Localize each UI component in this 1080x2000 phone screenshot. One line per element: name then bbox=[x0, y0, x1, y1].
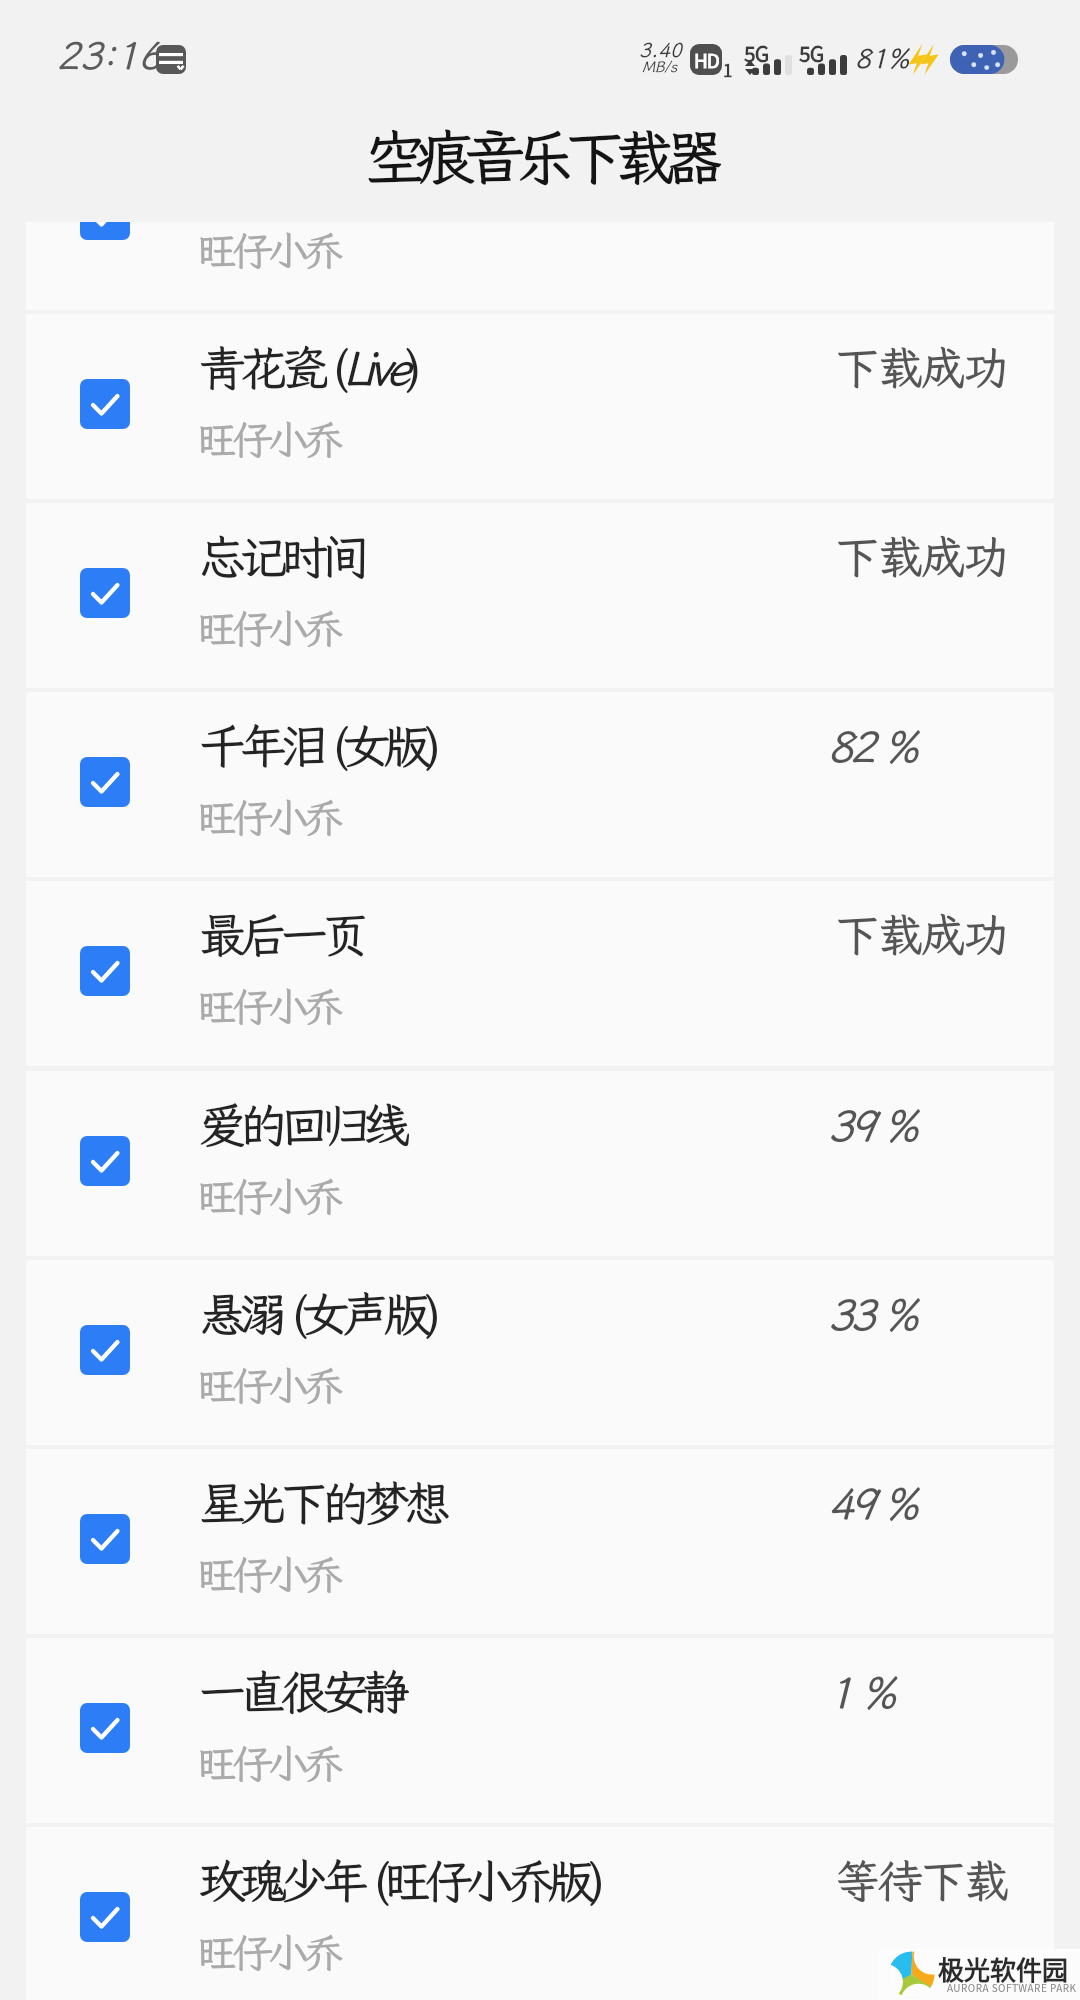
button[interactable]: Selected bbox=[80, 1703, 130, 1753]
staticText: AURORA SOFTWARE PARK bbox=[947, 1980, 1077, 1994]
staticText: 旺仔小乔 bbox=[197, 1359, 339, 1412]
staticText: 82 % bbox=[828, 718, 916, 775]
staticText: 爱的回归线 bbox=[199, 1093, 404, 1155]
staticText: 旺仔小乔 bbox=[197, 1548, 339, 1601]
staticText: 1 bbox=[723, 57, 733, 82]
other: Aurora Software Park bbox=[888, 1951, 935, 1998]
staticText: 旺仔小乔 bbox=[197, 413, 339, 466]
button[interactable]: Selected bbox=[26, 1449, 1054, 1634]
button[interactable]: Selected bbox=[80, 222, 130, 240]
staticText: MB/s bbox=[642, 57, 678, 77]
button[interactable]: Selected bbox=[80, 1514, 130, 1564]
staticText: 星光下的梦想 bbox=[199, 1471, 445, 1533]
other: Transit card bbox=[156, 45, 186, 74]
button[interactable]: Selected bbox=[26, 1638, 1054, 1823]
button[interactable]: Selected bbox=[26, 1260, 1054, 1445]
button[interactable]: Selected bbox=[26, 222, 1054, 310]
staticText: 旺仔小乔 bbox=[197, 224, 339, 277]
button[interactable]: Selected bbox=[80, 379, 130, 429]
staticText: 旺仔小乔 bbox=[197, 1926, 339, 1979]
staticText: 23:16 bbox=[57, 30, 162, 80]
staticText: 旺仔小乔 bbox=[197, 602, 339, 655]
staticText: HD bbox=[694, 46, 719, 74]
button[interactable]: Selected bbox=[80, 1892, 130, 1942]
staticText: 一直很安静 bbox=[199, 1660, 404, 1722]
staticText: 33 % bbox=[828, 1286, 916, 1343]
staticText: 1 % bbox=[828, 1664, 893, 1721]
staticText: 悬溺 (女声版) bbox=[199, 1282, 436, 1344]
button[interactable]: Selected bbox=[26, 692, 1054, 877]
button[interactable]: Selected bbox=[26, 1827, 1054, 2000]
button[interactable]: Selected bbox=[26, 1071, 1054, 1256]
staticText: 旺仔小乔 bbox=[197, 1170, 339, 1223]
staticText: 忘记时间 bbox=[199, 525, 363, 587]
staticText: 下载成功 bbox=[835, 905, 1008, 964]
staticText: 旺仔小乔 bbox=[197, 980, 339, 1033]
other: Battery 81 percent bbox=[950, 45, 1018, 74]
staticText: 极光软件园 bbox=[938, 1950, 1069, 1988]
staticText: 最后一页 bbox=[199, 903, 363, 965]
button[interactable]: Selected bbox=[80, 568, 130, 618]
other: Fast charging bbox=[908, 44, 942, 75]
staticText: 下载成功 bbox=[835, 338, 1008, 397]
staticText: 青花瓷 (Live) bbox=[199, 336, 416, 398]
staticText: 49 % bbox=[828, 1475, 916, 1532]
button[interactable]: Selected bbox=[80, 1325, 130, 1375]
staticText: 旺仔小乔 bbox=[197, 1737, 339, 1790]
staticText: 等待下载 bbox=[835, 1851, 1008, 1910]
button[interactable]: Selected bbox=[80, 946, 130, 996]
button[interactable]: Selected bbox=[80, 1136, 130, 1186]
staticText: 5G bbox=[799, 38, 824, 68]
button[interactable]: Selected bbox=[26, 881, 1054, 1066]
staticText: 39 % bbox=[828, 1097, 916, 1154]
staticText: 3.40 bbox=[639, 36, 682, 62]
staticText: 空痕音乐下载器 bbox=[365, 117, 715, 196]
staticText: 旺仔小乔 bbox=[197, 791, 339, 844]
staticText: 千年泪 (女版) bbox=[199, 714, 436, 776]
button[interactable]: Selected bbox=[80, 757, 130, 807]
staticText: 5G bbox=[744, 38, 769, 68]
staticText: 81% bbox=[855, 40, 909, 76]
staticText: 玫瑰少年 (旺仔小乔版) bbox=[199, 1849, 600, 1911]
button[interactable]: Selected bbox=[26, 314, 1054, 499]
staticText: 下载成功 bbox=[835, 527, 1008, 586]
button[interactable]: Selected bbox=[26, 503, 1054, 688]
